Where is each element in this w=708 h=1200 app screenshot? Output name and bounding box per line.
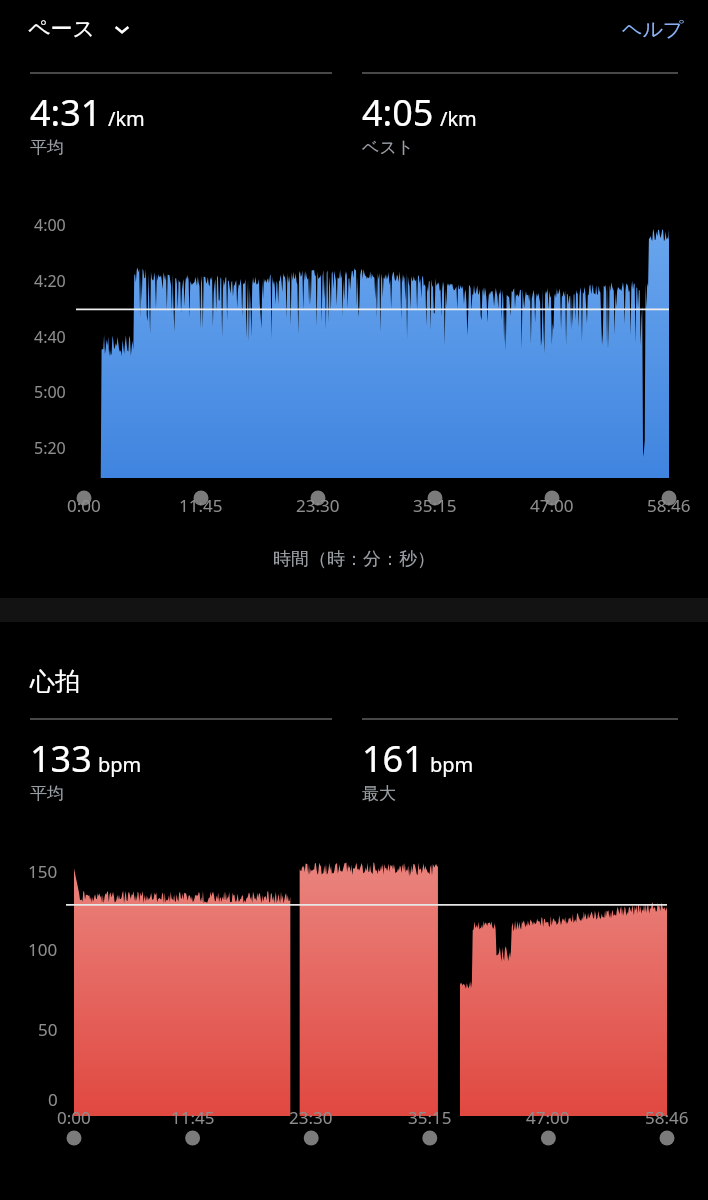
- staticText: 5:00: [34, 381, 66, 403]
- staticText: 161: [362, 734, 424, 783]
- staticText: 58:46: [645, 1106, 689, 1129]
- staticText: 35:15: [413, 494, 457, 517]
- staticText: 時間（時：分：秒）: [0, 548, 708, 571]
- staticText: 47:00: [526, 1106, 570, 1129]
- staticText: 100: [28, 938, 58, 961]
- staticText: 133: [30, 734, 92, 783]
- staticText: 150: [28, 860, 58, 883]
- staticText: 心拍: [30, 666, 80, 697]
- staticText: 4:40: [34, 326, 66, 348]
- staticText: /km: [440, 105, 477, 132]
- staticText: 58:46: [647, 494, 691, 517]
- staticText: ベスト: [362, 137, 415, 158]
- staticText: 47:00: [530, 494, 574, 517]
- staticText: ヘルプ: [622, 17, 684, 42]
- staticText: 4:20: [34, 270, 66, 292]
- button[interactable]: ヘルプ: [614, 9, 692, 50]
- staticText: 0:00: [57, 1106, 91, 1129]
- staticText: 23:30: [296, 494, 340, 517]
- staticText: 11:45: [179, 494, 223, 517]
- staticText: /km: [108, 105, 145, 132]
- staticText: bpm: [430, 751, 474, 778]
- staticText: 0: [48, 1088, 58, 1111]
- staticText: 23:30: [289, 1106, 333, 1129]
- staticText: 50: [38, 1018, 58, 1041]
- staticText: 35:15: [408, 1106, 452, 1129]
- staticText: bpm: [98, 751, 142, 778]
- staticText: 4:00: [34, 214, 66, 236]
- staticText: 0:00: [67, 494, 101, 517]
- staticText: 11:45: [171, 1106, 215, 1129]
- staticText: 平均: [30, 783, 64, 804]
- staticText: 最大: [362, 783, 396, 804]
- staticText: 4:31: [30, 88, 102, 137]
- button[interactable]: ペース: [16, 7, 144, 51]
- staticText: 5:20: [34, 437, 66, 459]
- staticText: 4:05: [362, 88, 434, 137]
- staticText: 平均: [30, 137, 64, 158]
- staticText: ペース: [28, 15, 96, 43]
